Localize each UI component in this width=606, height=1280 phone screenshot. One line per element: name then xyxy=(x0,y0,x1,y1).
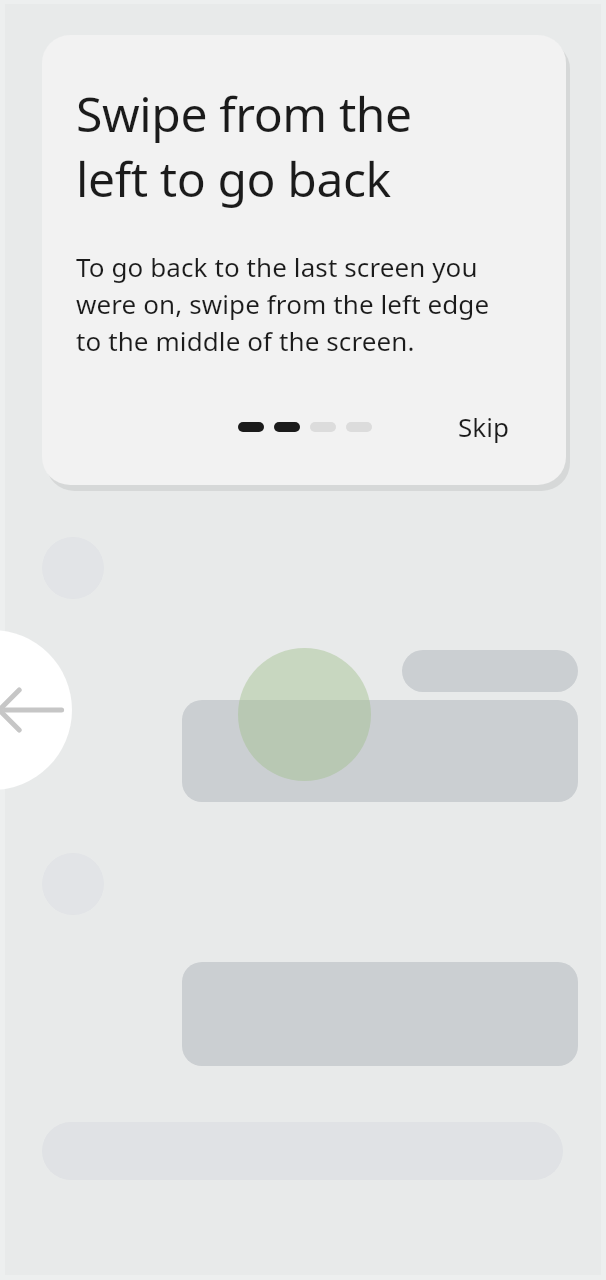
button[interactable]: Skip xyxy=(448,401,519,452)
staticText: Skip xyxy=(458,409,509,444)
button[interactable]: Back xyxy=(0,630,72,790)
button[interactable]: Page indicator xyxy=(346,422,372,432)
button[interactable]: Page indicator xyxy=(238,422,264,432)
button[interactable]: Page indicator xyxy=(274,422,300,432)
staticText: Swipe from the left to go back xyxy=(76,81,412,211)
staticText: To go back to the last screen you were o… xyxy=(76,249,490,359)
button[interactable]: Page indicator xyxy=(310,422,336,432)
